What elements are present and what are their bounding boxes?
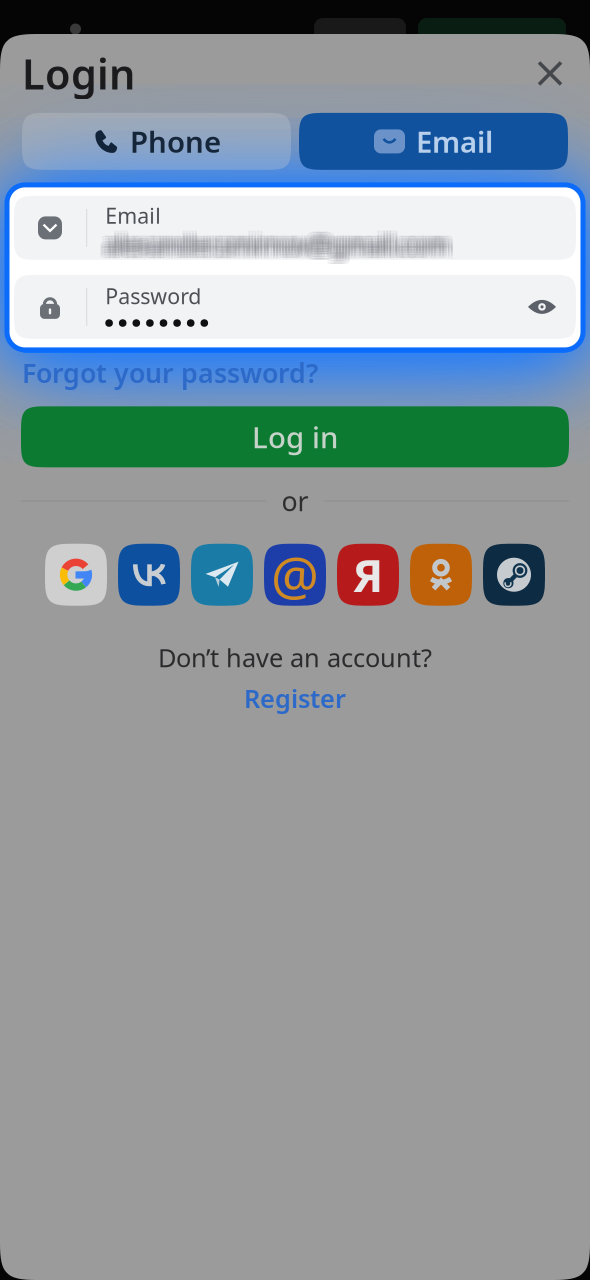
staticText: alexander.smirnov@gmail.com xyxy=(108,230,451,262)
button[interactable]: Sign in with VK xyxy=(118,544,180,606)
button[interactable]: Sign in with Odnoklassniki xyxy=(410,544,472,606)
staticText: alexander.smirnov@gmail.com xyxy=(108,228,451,260)
button[interactable]: Show password xyxy=(520,290,564,323)
staticText: Email xyxy=(416,122,493,161)
staticText: alexander.smirnov@gmail.com xyxy=(99,233,442,265)
button[interactable]: Sign in with Telegram xyxy=(191,544,253,606)
button[interactable]: Sign in with Google xyxy=(45,544,107,606)
button[interactable]: Phone xyxy=(22,113,291,170)
staticText: alexander.smirnov@gmail.com xyxy=(105,233,448,265)
staticText: alexander.smirnov@gmail.com xyxy=(99,226,442,258)
staticText: alexander.smirnov@gmail.com xyxy=(102,223,445,255)
staticText: Я xyxy=(352,545,383,605)
staticText: Register xyxy=(244,681,346,715)
button[interactable]: Sign in with Mail.ru xyxy=(264,544,326,606)
staticText: Email xyxy=(105,201,161,229)
staticText: alexander.smirnov@gmail.com xyxy=(105,226,448,258)
button[interactable]: Email xyxy=(299,113,568,170)
staticText: Login xyxy=(22,46,135,101)
staticText: alexander.smirnov@gmail.com xyxy=(99,230,442,262)
staticText: Phone xyxy=(130,122,221,161)
staticText: Don’t have an account? xyxy=(158,641,432,674)
staticText: or xyxy=(281,483,308,519)
staticText: alexander.smirnov@gmail.com xyxy=(108,223,451,255)
staticText: alexander.smirnov@gmail.com xyxy=(111,228,454,260)
staticText: alexander.smirnov@gmail.com xyxy=(111,233,454,265)
staticText: alexander.smirnov@gmail.com xyxy=(102,230,445,262)
staticText: alexander.smirnov@gmail.com xyxy=(102,228,445,260)
staticText: Password xyxy=(105,282,201,310)
button[interactable]: Log in xyxy=(21,406,569,467)
staticText: alexander.smirnov@gmail.com xyxy=(108,226,451,258)
button[interactable]: Register xyxy=(244,681,346,715)
staticText: alexander.smirnov@gmail.com xyxy=(105,230,448,262)
staticText: alexander.smirnov@gmail.com xyxy=(99,223,442,255)
staticText: alexander.smirnov@gmail.com xyxy=(111,230,454,262)
staticText: alexander.smirnov@gmail.com xyxy=(102,226,445,258)
staticText: alexander.smirnov@gmail.com xyxy=(108,233,451,265)
button[interactable]: Forgot your password? xyxy=(22,355,318,390)
staticText: alexander.smirnov@gmail.com xyxy=(105,223,448,255)
staticText: alexander.smirnov@gmail.com xyxy=(102,233,445,265)
button[interactable]: Close xyxy=(528,51,572,95)
button[interactable]: Sign in with Steam xyxy=(483,544,545,606)
staticText: alexander.smirnov@gmail.com xyxy=(111,226,454,258)
staticText: Forgot your password? xyxy=(22,355,318,390)
staticText: Log in xyxy=(252,417,338,456)
staticText: alexander.smirnov@gmail.com xyxy=(105,228,448,260)
button[interactable]: Sign in with Yandex xyxy=(337,544,399,606)
staticText: alexander.smirnov@gmail.com xyxy=(99,228,442,260)
staticText: alexander.smirnov@gmail.com xyxy=(111,223,454,255)
staticText: @ xyxy=(271,539,319,610)
